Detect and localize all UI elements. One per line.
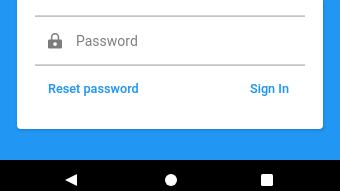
staticText: Sign In [250,81,289,96]
button[interactable]: Password [17,17,323,64]
staticText: Reset password [48,81,139,96]
button[interactable]: Reset password [17,73,170,104]
button[interactable]: Home [139,160,203,191]
button[interactable]: Back [39,160,103,191]
staticText: Password [76,33,138,49]
button[interactable]: Sign In [216,73,323,104]
button[interactable]: Recent apps [235,160,299,191]
